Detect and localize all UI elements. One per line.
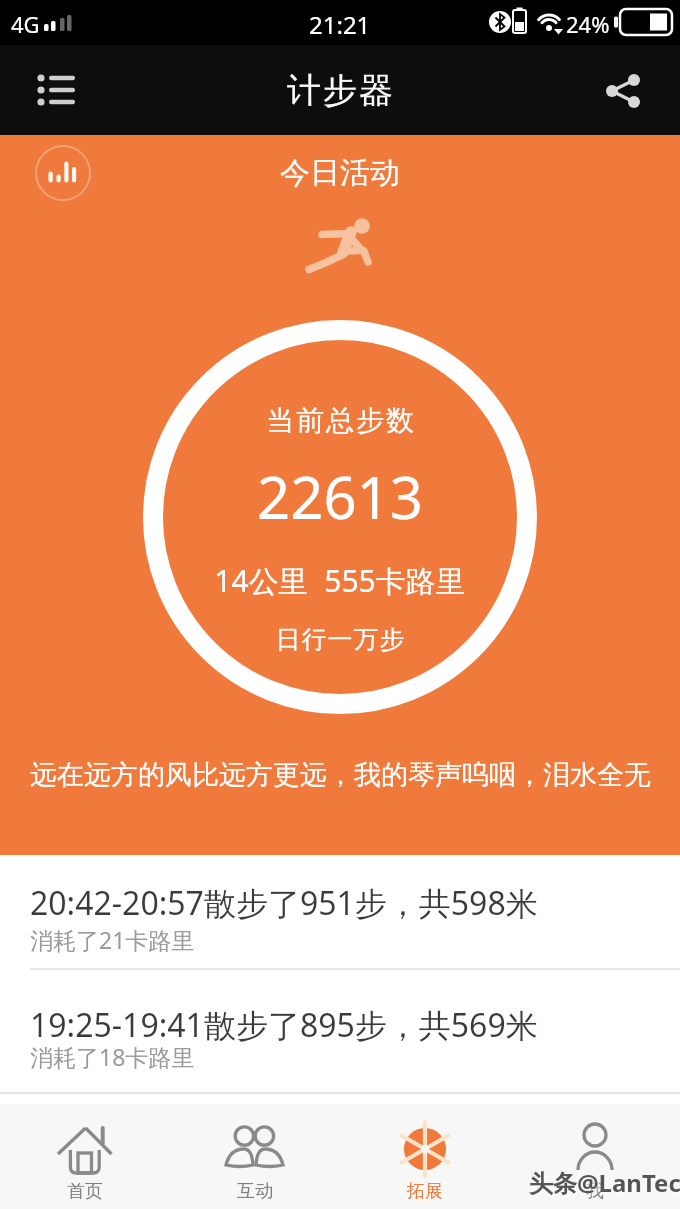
button[interactable] xyxy=(24,67,84,113)
button[interactable] xyxy=(598,68,654,114)
staticText: 互动 xyxy=(237,1180,273,1203)
staticText: 19:25-19:41散步了895步，共569米 xyxy=(30,1003,538,1047)
staticText: 我 xyxy=(586,1180,604,1203)
staticText: 日行一万步 xyxy=(275,624,405,655)
staticText: 20:42-20:57散步了951步，共598米 xyxy=(30,881,538,925)
staticText: 消耗了18卡路里 xyxy=(30,1041,195,1072)
staticText: 计步器 xyxy=(286,69,394,112)
staticText: 24% xyxy=(566,9,610,39)
button[interactable]: 我 xyxy=(510,1104,680,1209)
button[interactable]: 首页 xyxy=(0,1104,170,1209)
staticText: 14公里 555卡路里 xyxy=(214,560,466,601)
staticText: 消耗了21卡路里 xyxy=(30,924,195,955)
staticText: 22613 xyxy=(257,457,423,536)
staticText: 头条@LanTech xyxy=(529,1166,680,1199)
button[interactable]: 互动 xyxy=(170,1104,340,1209)
staticText: 当前总步数 xyxy=(265,403,415,438)
staticText: 21:21 xyxy=(309,8,371,41)
staticText: 今日活动 xyxy=(280,154,400,192)
staticText: 首页 xyxy=(67,1180,103,1203)
staticText: 拓展 xyxy=(407,1180,443,1203)
staticText: 4G xyxy=(11,9,40,39)
staticText: 远在远方的风比远方更远，我的琴声呜咽，泪水全无 xyxy=(30,758,651,792)
button[interactable]: 拓展 xyxy=(340,1104,510,1209)
